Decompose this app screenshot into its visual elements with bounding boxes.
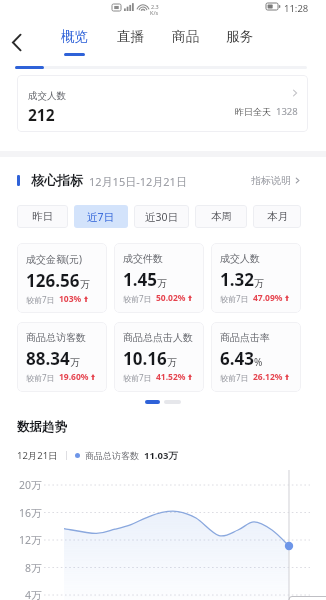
staticText: 本月 — [267, 210, 288, 223]
staticText: 较前7日 — [26, 372, 55, 383]
staticText: 11:28 — [284, 2, 309, 15]
button[interactable]: 近7日 — [74, 205, 128, 228]
staticText: 较前7日 — [123, 293, 152, 304]
staticText: 数据趋势 — [17, 419, 67, 435]
staticText: 12万 — [19, 533, 42, 547]
staticText: 核心指标 — [31, 172, 83, 188]
staticText: 较前7日 — [220, 372, 249, 383]
staticText: 较前7日 — [220, 293, 249, 304]
staticText: % — [254, 355, 263, 369]
staticText: 万 — [80, 278, 90, 291]
button[interactable]: 指标说明 — [251, 174, 301, 187]
button[interactable]: 商品总访客数 — [17, 322, 107, 392]
staticText: 19.60% — [59, 371, 89, 383]
button[interactable]: 直播 — [108, 24, 152, 60]
staticText: 8万 — [25, 561, 42, 575]
staticText: 26.12% — [253, 371, 283, 383]
staticText: 较前7日 — [26, 294, 55, 305]
button[interactable]: 成交件数 — [114, 243, 204, 313]
staticText: 126.56 — [26, 269, 80, 292]
staticText: 直播 — [117, 28, 144, 45]
staticText: 万 — [254, 277, 264, 290]
button[interactable]: 成交金额(元) — [17, 243, 107, 313]
staticText: 1.32 — [220, 268, 254, 291]
button[interactable]: 商品点击率 — [211, 322, 301, 392]
button[interactable]: 近30日 — [134, 205, 189, 228]
staticText: 商品总访客数 — [85, 450, 139, 461]
button[interactable]: 成交人数 — [17, 75, 308, 132]
staticText: 11.03万 — [144, 449, 178, 462]
button[interactable]: 本周 — [195, 205, 247, 228]
staticText: 成交金额(元) — [26, 252, 82, 266]
staticText: 服务 — [226, 28, 253, 45]
button[interactable]: 概览 — [52, 24, 96, 60]
staticText: 指标说明 — [251, 174, 291, 187]
staticText: 1.45 — [123, 268, 157, 291]
staticText: 20万 — [19, 478, 42, 492]
staticText: 88.34 — [26, 347, 70, 370]
staticText: 212 — [28, 104, 55, 125]
staticText: 50.02% — [156, 292, 186, 304]
staticText: 万 — [167, 356, 177, 369]
staticText: 成交件数 — [123, 252, 163, 265]
staticText: 成交人数 — [220, 252, 260, 265]
staticText: 10.16 — [123, 347, 167, 370]
staticText: 商品总访客数 — [26, 331, 86, 344]
button[interactable]: 服务 — [217, 24, 261, 60]
staticText: 近30日 — [145, 210, 179, 224]
staticText: 47.09% — [253, 292, 283, 304]
staticText: 2.3 — [151, 3, 159, 10]
staticText: 4万 — [25, 588, 42, 600]
staticText: 1328 — [276, 105, 298, 118]
staticText: 41.52% — [156, 371, 186, 383]
staticText: 近7日 — [87, 210, 115, 224]
button[interactable]: 成交人数 — [211, 243, 301, 313]
staticText: 商品 — [172, 28, 199, 45]
button[interactable]: 本月 — [253, 205, 301, 228]
staticText: 6.43 — [220, 347, 254, 370]
staticText: 较前7日 — [123, 372, 152, 383]
staticText: 商品点击率 — [220, 331, 270, 344]
staticText: 万 — [70, 356, 80, 369]
button[interactable]: 商品总点击人数 — [114, 322, 204, 392]
staticText: 昨日 — [32, 210, 53, 223]
staticText: 16万 — [19, 506, 42, 520]
staticText: 概览 — [61, 28, 88, 45]
staticText: 103% — [59, 293, 82, 305]
button[interactable]: 商品 — [163, 24, 207, 60]
button[interactable]: Back — [1, 27, 31, 57]
staticText: 12月15日-12月21日 — [89, 174, 187, 189]
staticText: 商品总点击人数 — [123, 331, 193, 344]
staticText: 昨日全天 — [235, 106, 271, 117]
staticText: K/s — [150, 9, 159, 16]
button[interactable]: 昨日 — [17, 205, 68, 228]
staticText: 本周 — [211, 210, 232, 223]
staticText: 万 — [157, 277, 167, 290]
staticText: 12月21日 — [17, 449, 58, 462]
staticText: 成交人数 — [28, 90, 66, 102]
